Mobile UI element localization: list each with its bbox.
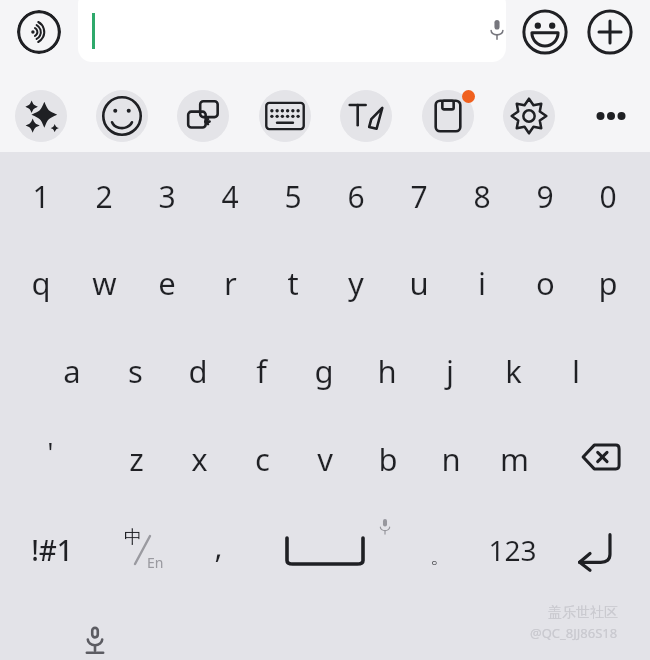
staticText: 盖乐世社区 (548, 604, 618, 622)
button[interactable]: c (202, 429, 322, 489)
button[interactable]: 7 (359, 166, 479, 226)
button[interactable]: e (107, 253, 227, 313)
button[interactable]: b (328, 429, 448, 489)
staticText: d (188, 350, 208, 392)
staticText: i (478, 262, 486, 304)
staticText: 8 (473, 176, 491, 217)
button[interactable]: Translate (177, 90, 229, 142)
button[interactable]: , (158, 516, 278, 576)
staticText: 中 (124, 526, 142, 549)
button[interactable]: 4 (170, 166, 290, 226)
staticText: p (598, 262, 618, 304)
button[interactable]: Settings (503, 90, 555, 142)
button[interactable]: 2 (44, 166, 164, 226)
staticText: u (409, 262, 429, 304)
staticText: 123 (488, 531, 537, 569)
button[interactable]: 123 (452, 520, 572, 580)
staticText: k (505, 350, 522, 392)
staticText: 1 (32, 176, 50, 217)
button[interactable]: u (359, 253, 479, 313)
button[interactable]: 1 (0, 166, 101, 226)
button[interactable]: t (233, 253, 353, 313)
staticText: 3 (158, 176, 176, 217)
staticText: 。 (430, 544, 450, 569)
button[interactable]: y (296, 253, 416, 313)
button[interactable]: r (170, 253, 290, 313)
staticText: , (214, 526, 223, 567)
button[interactable]: Space (250, 518, 400, 582)
staticText: s (128, 350, 143, 392)
staticText: 9 (536, 176, 554, 217)
button[interactable]: g (264, 341, 384, 401)
button[interactable]: Switch Chinese English (101, 518, 181, 582)
staticText: 0 (599, 176, 617, 217)
staticText: o (536, 262, 555, 304)
staticText: r (224, 262, 237, 304)
button[interactable]: k (453, 341, 573, 401)
staticText: @QC_8JJ86S18 (530, 624, 618, 642)
button[interactable]: 6 (296, 166, 416, 226)
button[interactable]: Stickers and emoji (96, 90, 148, 142)
staticText: 7 (410, 176, 428, 217)
button[interactable]: AI suggestions (15, 90, 67, 142)
button[interactable]: 。 (380, 526, 500, 586)
button[interactable]: i (422, 253, 542, 313)
button[interactable]: !#1 (0, 520, 112, 580)
staticText: 2 (95, 176, 113, 217)
button[interactable]: o (485, 253, 605, 313)
button[interactable]: h (327, 341, 447, 401)
button[interactable]: w (44, 253, 164, 313)
button[interactable]: 5 (233, 166, 353, 226)
staticText: j (446, 350, 454, 392)
button[interactable]: Voice input mode (17, 10, 61, 54)
button[interactable]: ' (0, 422, 110, 482)
staticText: x (191, 438, 208, 480)
button[interactable]: m (454, 429, 574, 489)
staticText: g (314, 350, 334, 392)
staticText: 5 (284, 176, 302, 217)
staticText: h (377, 350, 397, 392)
button[interactable]: 9 (485, 166, 605, 226)
staticText: c (255, 438, 270, 480)
staticText: !#1 (31, 531, 73, 569)
button[interactable]: Voice typing (371, 510, 399, 542)
button[interactable]: Emoji (521, 8, 569, 56)
button[interactable]: x (139, 429, 259, 489)
staticText: f (256, 350, 267, 392)
staticText: En (147, 553, 164, 572)
button[interactable]: v (265, 429, 385, 489)
staticText: y (348, 262, 364, 304)
button[interactable]: Add (586, 8, 634, 56)
button[interactable]: 3 (107, 166, 227, 226)
button[interactable]: Voice search (481, 13, 513, 45)
button[interactable] (78, 0, 506, 62)
staticText: b (378, 438, 398, 480)
staticText: v (317, 438, 333, 480)
button[interactable]: Enter (563, 518, 627, 582)
button[interactable]: Handwriting (340, 90, 392, 142)
staticText: a (63, 350, 81, 392)
button[interactable]: 8 (422, 166, 542, 226)
button[interactable]: More options (585, 90, 637, 142)
button[interactable]: Backspace (570, 427, 634, 487)
button[interactable]: q (0, 253, 101, 313)
staticText: t (287, 262, 299, 304)
button[interactable]: p (548, 253, 650, 313)
staticText: n (441, 438, 461, 480)
button[interactable]: 0 (548, 166, 650, 226)
button[interactable]: s (75, 341, 195, 401)
button[interactable]: n (391, 429, 511, 489)
button[interactable]: d (138, 341, 258, 401)
staticText: q (31, 262, 51, 304)
button[interactable]: j (390, 341, 510, 401)
button[interactable]: Keyboard layout (259, 90, 311, 142)
button[interactable]: z (76, 429, 196, 489)
button[interactable]: l (516, 341, 636, 401)
button[interactable]: a (12, 341, 132, 401)
staticText: 4 (221, 176, 239, 217)
button[interactable]: Clipboard (422, 90, 474, 142)
button[interactable]: Voice input (71, 614, 119, 660)
staticText: e (158, 262, 176, 304)
staticText: z (129, 438, 144, 480)
button[interactable]: f (201, 341, 321, 401)
